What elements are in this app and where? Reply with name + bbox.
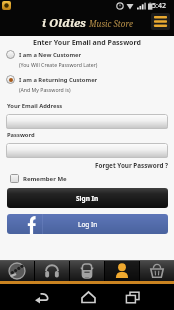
- staticText: Enter Your Email and Password: [0, 38, 174, 48]
- staticText: i Oldies: [42, 15, 87, 31]
- button[interactable]: [80, 290, 97, 304]
- staticText: (You Will Create Password Later): [19, 61, 98, 68]
- button[interactable]: [0, 260, 34, 281]
- staticText: I am a New Customer: [19, 51, 82, 59]
- button[interactable]: Sign In: [7, 188, 168, 208]
- button[interactable]: [33, 290, 50, 304]
- staticText: Password: [7, 131, 35, 139]
- staticText: Your Email Address: [7, 102, 63, 110]
- button[interactable]: Log In: [7, 214, 168, 234]
- button[interactable]: [69, 260, 104, 281]
- staticText: (And My Password is): [19, 86, 71, 93]
- button[interactable]: [6, 143, 168, 158]
- button[interactable]: [139, 260, 174, 281]
- button[interactable]: [104, 260, 139, 281]
- button[interactable]: Forget Your Password ?: [80, 161, 168, 170]
- button[interactable]: I am a New Customer: [5, 49, 125, 61]
- button[interactable]: [151, 13, 170, 30]
- button[interactable]: I am a Returning Customer: [5, 74, 145, 86]
- staticText: Sign In: [76, 194, 99, 203]
- staticText: Remember Me: [23, 175, 67, 183]
- button[interactable]: [6, 114, 168, 129]
- staticText: Music Store: [87, 18, 133, 29]
- button[interactable]: Remember Me: [10, 173, 80, 184]
- staticText: I am a Returning Customer: [19, 76, 98, 84]
- button[interactable]: [124, 290, 141, 304]
- staticText: Log In: [78, 220, 98, 229]
- staticText: 5:42: [152, 1, 166, 11]
- button[interactable]: [34, 260, 69, 281]
